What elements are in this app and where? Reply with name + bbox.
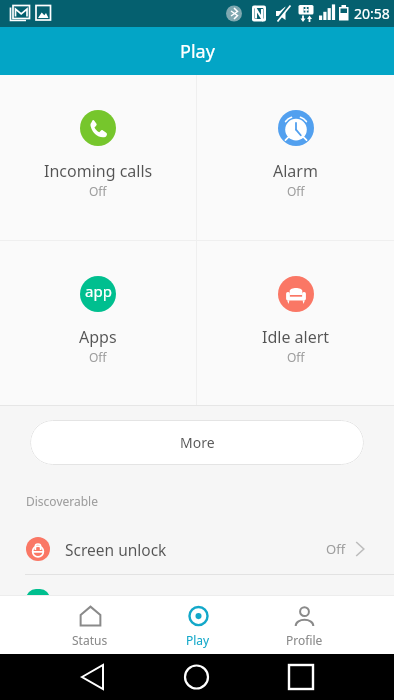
- staticText: Screen unlock: [65, 539, 167, 560]
- button[interactable]: More: [30, 420, 364, 465]
- button[interactable]: Play: [144, 600, 251, 654]
- staticText: 20:58: [354, 4, 390, 23]
- staticText: Off: [89, 349, 107, 365]
- staticText: Off: [326, 540, 346, 558]
- staticText: Profile: [286, 632, 323, 648]
- staticText: Idle alert: [262, 326, 330, 348]
- staticText: Play: [180, 39, 215, 64]
- staticText: Discoverable: [26, 493, 98, 509]
- button[interactable]: Screen unlock: [0, 524, 394, 574]
- button[interactable]: Alarm: [197, 75, 394, 240]
- staticText: Alarm: [273, 160, 318, 182]
- staticText: Incoming calls: [44, 160, 153, 182]
- staticText: More: [180, 433, 215, 452]
- button[interactable]: Idle alert: [197, 241, 394, 405]
- button[interactable]: Next discoverable feature: [0, 575, 394, 595]
- staticText: Status: [72, 632, 108, 648]
- staticText: Off: [89, 183, 107, 199]
- staticText: Off: [287, 349, 305, 365]
- button[interactable]: Profile: [251, 600, 358, 654]
- staticText: Play: [186, 632, 210, 648]
- button[interactable]: app: [0, 241, 196, 405]
- button[interactable]: Incoming calls: [0, 75, 196, 240]
- staticText: Apps: [79, 326, 117, 348]
- staticText: app: [85, 281, 112, 301]
- button[interactable]: Status: [36, 600, 144, 654]
- staticText: Off: [287, 183, 305, 199]
